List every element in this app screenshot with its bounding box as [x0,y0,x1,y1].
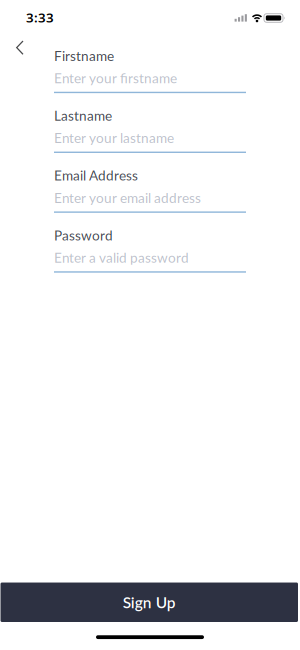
button[interactable]: Enter your email address [54,189,246,213]
button[interactable]: Enter a valid password [54,249,246,273]
button[interactable]: Sign Up [0,582,298,622]
staticText: 3:33 [26,8,54,26]
staticText: Enter your lastname [54,130,174,146]
button[interactable] [6,34,34,62]
staticText: Email Address [54,167,138,183]
button[interactable]: Enter your lastname [54,130,246,153]
staticText: Enter your firstname [54,70,177,86]
staticText: Enter your email address [54,189,201,206]
staticText: Lastname [54,107,112,124]
staticText: Sign Up [123,593,176,612]
button[interactable]: Enter your firstname [54,70,246,93]
staticText: Password [54,227,113,243]
staticText: Firstname [54,47,114,64]
staticText: Enter a valid password [54,249,189,266]
